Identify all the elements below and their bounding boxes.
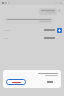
button[interactable]	[6, 79, 26, 85]
button[interactable]	[5, 17, 53, 24]
button[interactable]	[42, 79, 58, 85]
button[interactable]	[0, 35, 64, 41]
button[interactable]	[39, 8, 57, 15]
button[interactable]: Add attachment	[0, 27, 64, 33]
button[interactable]: Add attachment	[57, 28, 62, 33]
